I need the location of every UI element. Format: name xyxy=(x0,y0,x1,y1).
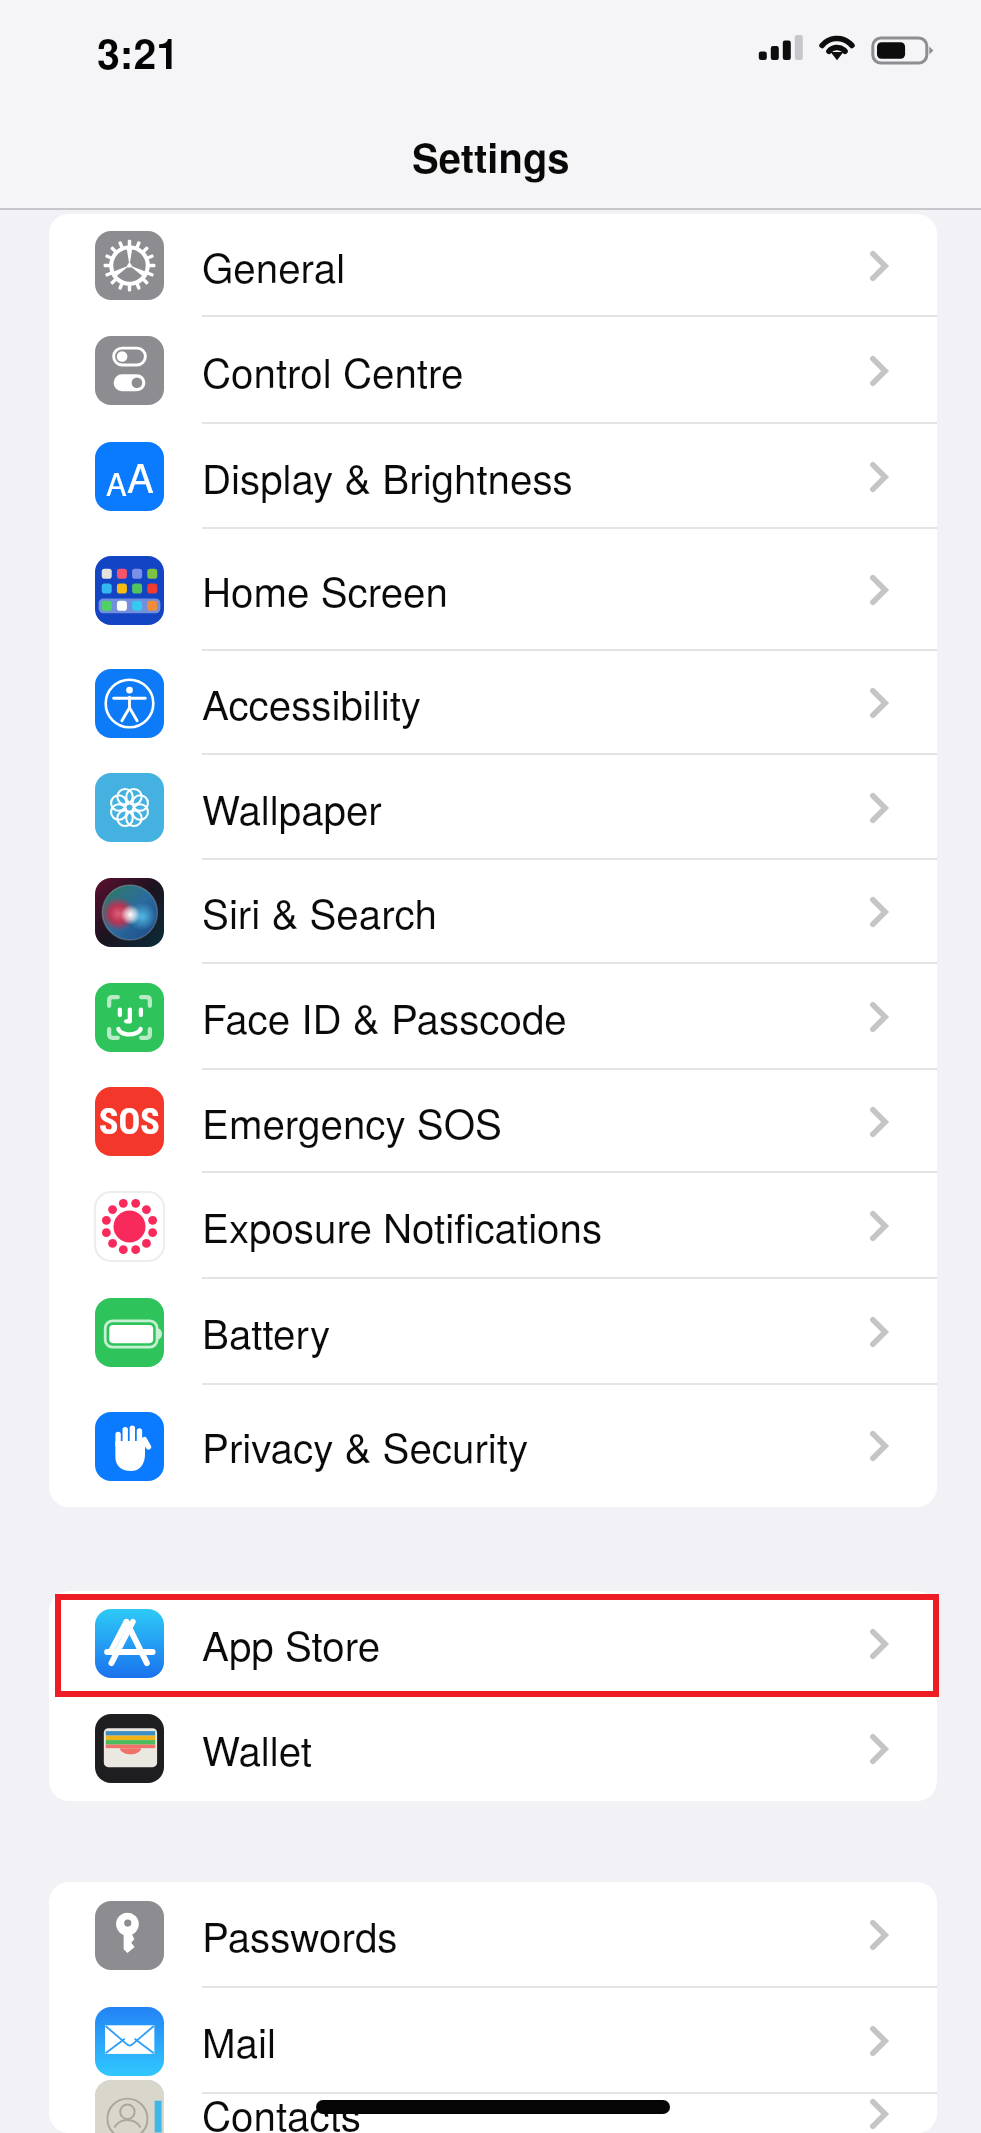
button[interactable]: Face ID & Passcode xyxy=(49,964,937,1070)
staticText: Mail xyxy=(202,2012,276,2070)
staticText: SOS xyxy=(99,1101,160,1143)
staticText: Wallpaper xyxy=(202,779,382,837)
staticText: General xyxy=(202,237,346,295)
staticText: Contacts xyxy=(202,2085,362,2133)
staticText: Face ID & Passcode xyxy=(202,988,567,1046)
button[interactable]: Mail xyxy=(49,1988,937,2094)
other: Highlighted App Store row xyxy=(55,1594,939,1697)
staticText: Exposure Notifications xyxy=(202,1197,603,1255)
button[interactable]: Control Centre xyxy=(49,317,937,424)
staticText: Privacy & Security xyxy=(202,1417,529,1475)
button[interactable]: App Store xyxy=(49,1591,937,1696)
button[interactable]: General xyxy=(49,214,937,317)
staticText: Accessibility xyxy=(202,674,422,732)
staticText: A xyxy=(106,460,127,504)
button[interactable]: SOS xyxy=(49,1070,937,1173)
staticText: App Store xyxy=(202,1615,381,1673)
staticText: Settings xyxy=(412,128,570,185)
button[interactable]: Passwords xyxy=(49,1882,937,1988)
button[interactable]: Home Screen xyxy=(49,529,937,651)
button[interactable]: Siri & Search xyxy=(49,860,937,964)
button[interactable]: Wallet xyxy=(49,1696,937,1801)
button[interactable]: Contacts xyxy=(49,2061,937,2133)
staticText: Passwords xyxy=(202,1906,398,1964)
staticText: 3:21 xyxy=(97,23,180,82)
staticText: Display & Brightness xyxy=(202,448,573,506)
button[interactable]: A xyxy=(49,424,937,529)
button[interactable]: Wallpaper xyxy=(49,755,937,860)
staticText: Wallet xyxy=(202,1720,312,1778)
button[interactable]: Battery xyxy=(49,1279,937,1385)
button[interactable]: Accessibility xyxy=(49,651,937,755)
staticText: A xyxy=(127,447,154,504)
staticText: Home Screen xyxy=(202,561,448,619)
button[interactable]: Exposure Notifications xyxy=(49,1173,937,1279)
staticText: Emergency SOS xyxy=(202,1093,502,1151)
staticText: Battery xyxy=(202,1303,331,1361)
staticText: Siri & Search xyxy=(202,883,437,941)
staticText: Control Centre xyxy=(202,342,464,400)
button[interactable]: Privacy & Security xyxy=(49,1385,937,1507)
